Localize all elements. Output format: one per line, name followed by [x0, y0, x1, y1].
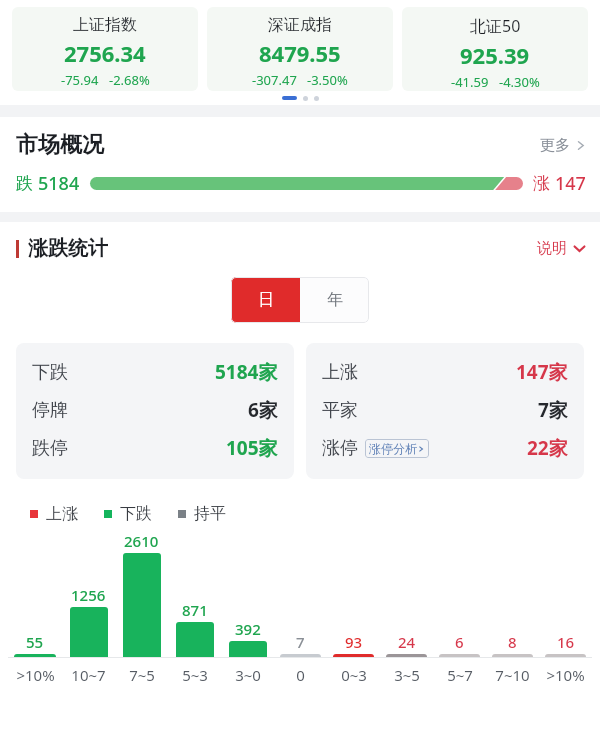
button[interactable]: 说明 — [537, 239, 586, 258]
staticText: 5184家 — [215, 359, 278, 385]
staticText: 3~5 — [394, 665, 420, 685]
staticText: 93 — [345, 632, 363, 652]
staticText: 392 — [235, 619, 261, 639]
staticText: 跌 — [16, 173, 33, 194]
staticText: 上证指数 — [73, 15, 137, 35]
staticText: 871 — [182, 600, 208, 620]
staticText: 8 — [508, 632, 517, 652]
staticText: 105家 — [226, 435, 278, 461]
button[interactable]: 涨停分析 — [365, 439, 429, 458]
staticText: -2.68% — [109, 71, 150, 89]
staticText: 上涨 — [46, 504, 78, 524]
button[interactable]: 年 — [300, 277, 369, 323]
staticText: 147 — [555, 171, 586, 196]
staticText: 24 — [398, 632, 416, 652]
staticText: 16 — [557, 632, 575, 652]
staticText: 持平 — [194, 504, 226, 524]
staticText: 上涨 — [322, 361, 358, 384]
staticText: 说明 — [537, 239, 567, 258]
staticText: 3~0 — [235, 665, 261, 685]
staticText: 22家 — [527, 435, 568, 461]
staticText: 年 — [327, 290, 343, 310]
staticText: 北证50 — [470, 15, 521, 37]
staticText: 1256 — [71, 585, 106, 605]
staticText: -41.59 — [451, 73, 489, 91]
staticText: 涨停分析 — [369, 441, 417, 456]
button[interactable]: 北证50 — [402, 7, 588, 91]
staticText: 147家 — [516, 359, 568, 385]
staticText: 停牌 — [32, 399, 68, 422]
staticText: 涨跌统计 — [28, 236, 108, 261]
staticText: 下跌 — [120, 504, 152, 524]
staticText: 7~10 — [495, 665, 530, 685]
staticText: 10~7 — [71, 665, 106, 685]
staticText: 涨停 — [322, 437, 358, 460]
staticText: 更多 — [540, 136, 570, 155]
staticText: 7~5 — [129, 665, 155, 685]
staticText: 6 — [455, 632, 464, 652]
staticText: 下跌 — [32, 361, 68, 384]
staticText: >10% — [546, 665, 585, 685]
staticText: 平家 — [322, 399, 358, 422]
staticText: 2756.34 — [64, 38, 146, 68]
staticText: 925.39 — [460, 40, 530, 70]
staticText: -307.47 — [252, 71, 297, 89]
staticText: 5184 — [38, 171, 80, 196]
staticText: 市场概况 — [16, 131, 104, 159]
staticText: 0 — [296, 665, 305, 685]
staticText: 8479.55 — [259, 38, 341, 68]
button[interactable]: 上证指数 — [12, 7, 198, 91]
staticText: 跌停 — [32, 437, 68, 460]
staticText: 0~3 — [341, 665, 367, 685]
staticText: 深证成指 — [268, 15, 332, 35]
staticText: 日 — [258, 290, 274, 310]
staticText: 5~7 — [447, 665, 473, 685]
staticText: 5~3 — [182, 665, 208, 685]
staticText: -4.30% — [499, 73, 540, 91]
staticText: 7家 — [538, 397, 568, 423]
staticText: -75.94 — [61, 71, 99, 89]
staticText: >10% — [16, 665, 55, 685]
staticText: 涨 — [533, 173, 550, 194]
button[interactable]: 更多 — [540, 136, 586, 155]
staticText: 7 — [296, 632, 305, 652]
staticText: -3.50% — [307, 71, 348, 89]
staticText: 2610 — [124, 531, 159, 551]
staticText: 55 — [26, 632, 44, 652]
button[interactable]: 深证成指 — [207, 7, 393, 91]
button[interactable]: 日 — [231, 277, 300, 323]
staticText: 6家 — [248, 397, 278, 423]
